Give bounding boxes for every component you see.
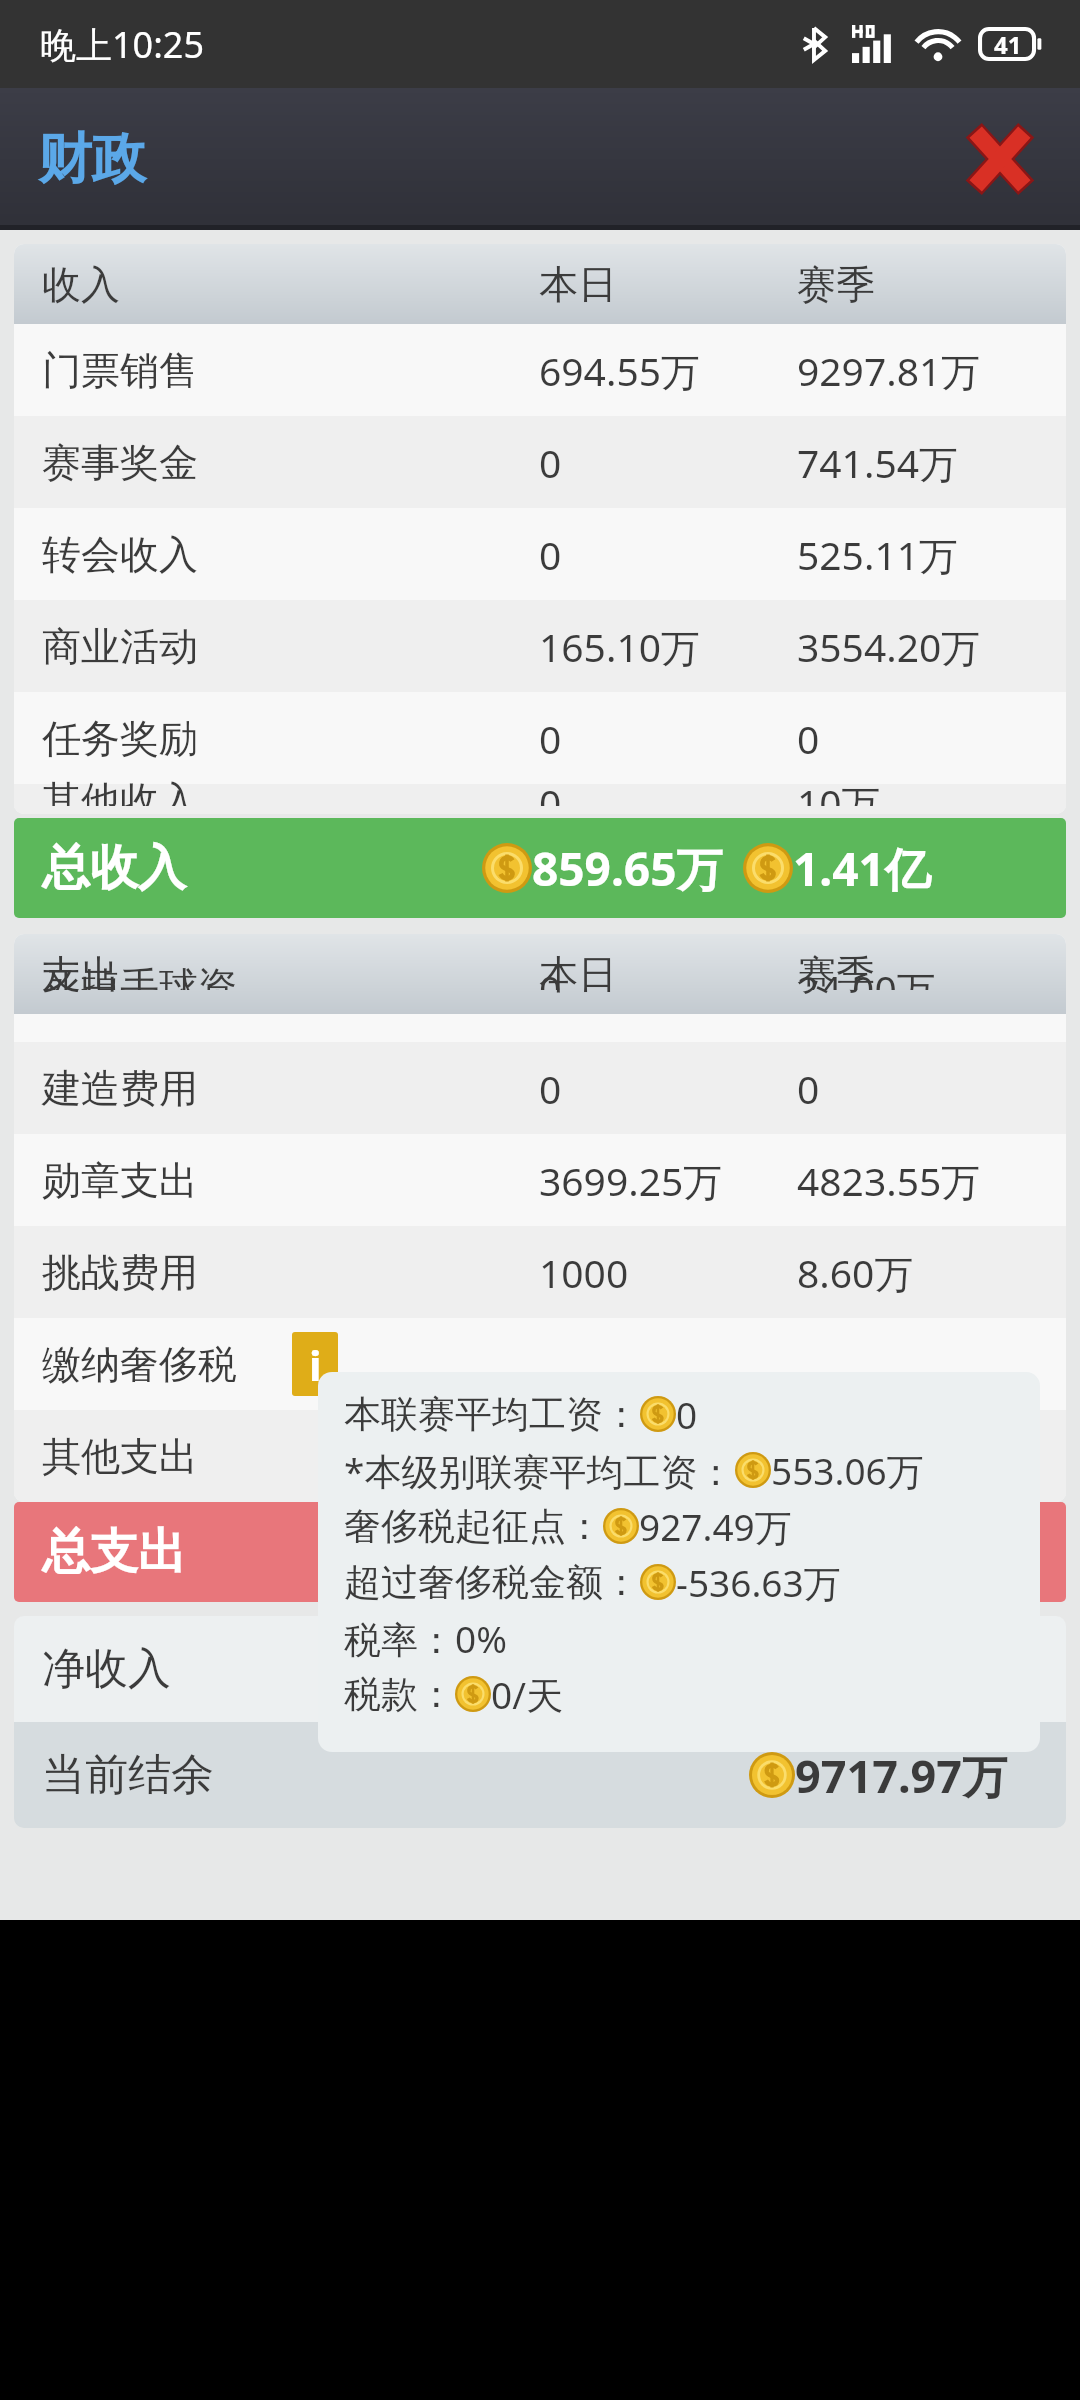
staticText: 0	[797, 1062, 1058, 1115]
staticText: 3554.20万	[797, 620, 1058, 673]
staticText: 本日	[539, 260, 797, 309]
staticText: 553.06万	[771, 1445, 924, 1496]
staticText: 741.54万	[797, 436, 1058, 489]
staticText: 收入	[42, 260, 539, 309]
staticText: 本日	[539, 950, 797, 999]
staticText: 赛事奖金	[42, 438, 539, 487]
staticText: 奢侈税起征点：	[344, 1503, 603, 1550]
staticText: 支出	[42, 950, 539, 999]
staticText: 694.55万	[539, 344, 797, 397]
staticText: 商业活动	[42, 622, 539, 671]
button[interactable]: 其他支出	[14, 1410, 1066, 1502]
staticText: 晚上10:25	[40, 20, 205, 69]
staticText: 0	[539, 776, 797, 806]
staticText: 525.11万	[797, 528, 1058, 581]
staticText: 建造费用	[42, 1064, 539, 1113]
button[interactable]: 建造费用	[14, 1042, 1066, 1134]
staticText: 0	[676, 1389, 698, 1439]
button[interactable]: 任务奖励	[14, 692, 1066, 784]
staticText: 0/天	[491, 1669, 563, 1720]
staticText: 1.41亿	[793, 837, 931, 900]
button[interactable]: 勋章支出	[14, 1134, 1066, 1226]
staticText: 9297.81万	[797, 344, 1058, 397]
staticText: -536.63万	[676, 1557, 841, 1608]
staticText: 927.49万	[639, 1501, 792, 1552]
staticText: 0	[539, 962, 797, 990]
button[interactable]: 当前结余	[14, 1722, 1066, 1828]
staticText: 挑战费用	[42, 1248, 539, 1297]
staticText: 转会收入	[42, 530, 539, 579]
staticText: 859.65万	[532, 837, 723, 900]
button[interactable]: 挑战费用	[14, 1226, 1066, 1318]
button[interactable]: 商业活动	[14, 600, 1066, 692]
staticText: 死掉手球资	[42, 962, 539, 990]
staticText: 0	[539, 528, 797, 581]
staticText: 0	[539, 436, 797, 489]
staticText: 4823.55万	[797, 1154, 1058, 1207]
staticText: 税款：	[344, 1671, 455, 1718]
staticText: 当前结余	[42, 1748, 749, 1802]
staticText: *本级别联赛平均工资：	[344, 1445, 735, 1496]
staticText: 0	[539, 1062, 797, 1115]
staticText: i	[309, 1336, 322, 1393]
staticText: 本联赛平均工资：	[344, 1391, 640, 1438]
staticText: 0	[539, 712, 797, 765]
button[interactable]: 赛事奖金	[14, 416, 1066, 508]
button[interactable]: 奢侈税说明	[292, 1332, 338, 1396]
button[interactable]: 转会收入	[14, 508, 1066, 600]
staticText: 10万	[797, 776, 1066, 806]
staticText: 165.10万	[539, 620, 797, 673]
staticText: 其他收入	[42, 776, 539, 806]
staticText	[539, 1430, 797, 1483]
staticText: 税率：0%	[344, 1613, 507, 1664]
staticText: 0	[797, 712, 1058, 765]
button[interactable]: 关闭	[952, 111, 1048, 207]
staticText: 3699.25万	[539, 1154, 797, 1207]
staticText: 净收入	[42, 1642, 735, 1696]
button[interactable]: 净收入	[14, 1616, 1066, 1722]
button[interactable]: 门票销售	[14, 324, 1066, 416]
staticText: 勋章支出	[42, 1156, 539, 1205]
staticText: 任务奖励	[42, 714, 539, 763]
staticText: 超过奢侈税金额：	[344, 1559, 640, 1606]
staticText: 41	[994, 28, 1022, 61]
button[interactable]: 其他收入	[14, 784, 1066, 814]
button[interactable]: 总支出	[14, 1502, 1066, 1602]
staticText: 总支出	[42, 1522, 186, 1582]
staticText: 总收入	[42, 838, 482, 898]
staticText: 缴纳奢侈税	[42, 1340, 292, 1389]
staticText: 赛季	[797, 260, 1066, 309]
staticText: 门票销售	[42, 346, 539, 395]
staticText: 财政	[38, 125, 146, 193]
staticText	[797, 1430, 1058, 1483]
staticText: 24.00万	[797, 962, 1066, 990]
staticText: 9717.97万	[795, 1745, 1008, 1806]
button[interactable]: 缴纳奢侈税	[14, 1318, 1066, 1410]
staticText: 其他支出	[42, 1432, 539, 1481]
button[interactable]: 总收入	[14, 818, 1066, 918]
staticText: 8.60万	[797, 1246, 1058, 1299]
staticText: 1000	[539, 1246, 797, 1299]
staticText: 赛季	[797, 950, 1066, 999]
